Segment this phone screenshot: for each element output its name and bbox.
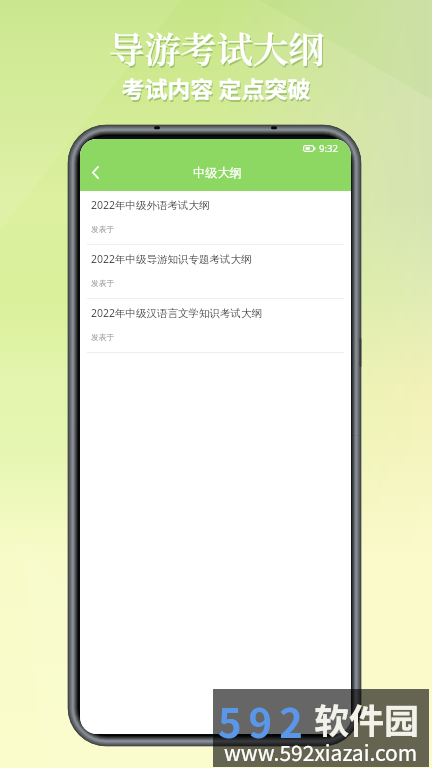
staticText: 考试内容 定点突破 xyxy=(121,71,311,104)
staticText: 导游考试大纲 xyxy=(108,22,325,74)
button[interactable]: 2022年中级汉语言文学知识考试大纲 xyxy=(80,299,351,353)
button[interactable]: 2022年中级外语考试大纲 xyxy=(80,191,351,245)
staticText: 中级大纲 xyxy=(193,165,242,180)
staticText: 592 xyxy=(218,692,310,750)
staticText: 考试内容 定点突破 xyxy=(122,73,312,106)
staticText: 发表于 xyxy=(91,278,115,288)
staticText: 发表于 xyxy=(91,332,115,342)
button[interactable]: Back xyxy=(80,157,110,187)
staticText: www.592xiazai.com xyxy=(224,737,418,767)
staticText: 9:32 xyxy=(319,142,338,155)
staticText: 2022年中级导游知识专题考试大纲 xyxy=(91,252,252,266)
staticText: 2022年中级外语考试大纲 xyxy=(91,198,210,212)
staticText: 导游考试大纲 xyxy=(109,24,326,76)
staticText: 发表于 xyxy=(91,224,115,234)
staticText: 2022年中级汉语言文学知识考试大纲 xyxy=(91,306,263,320)
staticText: 软件园 xyxy=(314,693,420,744)
button[interactable]: 2022年中级导游知识专题考试大纲 xyxy=(80,245,351,299)
